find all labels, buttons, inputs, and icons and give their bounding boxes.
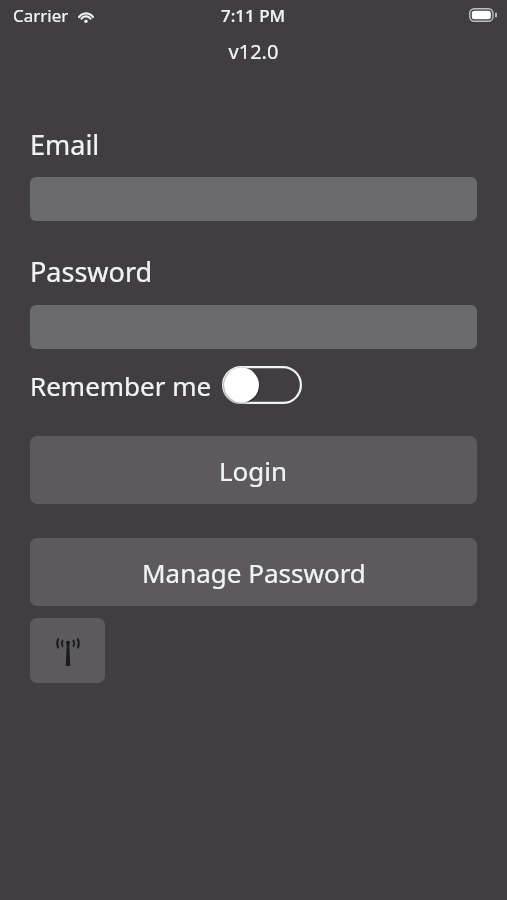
staticText: Manage Password xyxy=(142,555,366,590)
button[interactable]: Remember me xyxy=(30,366,302,404)
staticText: 7:11 PM xyxy=(221,4,286,27)
staticText: Email xyxy=(30,126,100,163)
button[interactable]: Remember me toggle xyxy=(222,366,302,404)
staticText: Password xyxy=(30,253,153,290)
staticText: Remember me xyxy=(30,368,212,403)
button[interactable]: Manage Password xyxy=(30,538,477,606)
staticText: Login xyxy=(219,453,288,488)
button[interactable]: Login xyxy=(30,436,477,504)
staticText: v12.0 xyxy=(0,38,507,65)
staticText: Carrier xyxy=(13,4,69,27)
button[interactable]: Network settings xyxy=(30,618,105,683)
